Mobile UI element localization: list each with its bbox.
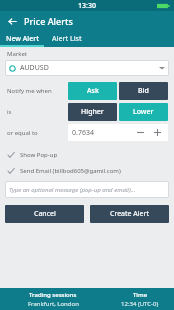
button[interactable]: Create Alert	[90, 205, 169, 223]
staticText: Time	[133, 291, 148, 299]
staticText: Bid	[138, 86, 149, 96]
staticText: Show Pop-up	[20, 151, 58, 159]
staticText: Ask	[87, 86, 99, 96]
button[interactable]: Send Email (billbod605@gamil.com)	[5, 165, 169, 176]
staticText: Create Alert	[110, 209, 149, 219]
staticText: 12:34 (UTC-0)	[121, 300, 159, 308]
button[interactable]: Lower	[119, 103, 168, 121]
staticText: Price Alerts	[24, 15, 73, 27]
staticText: Frankfurt, London	[28, 300, 79, 308]
button[interactable]: Time	[106, 291, 174, 308]
staticText: AUDUSD	[20, 63, 49, 73]
staticText: Alert List	[52, 34, 82, 44]
staticText: Type an optional message (pop-up and ema…	[9, 186, 136, 194]
staticText: New Alert	[6, 34, 39, 44]
button[interactable]: Ask	[68, 82, 117, 100]
button[interactable]: Decrease	[134, 126, 147, 139]
button[interactable]: Increase	[151, 126, 164, 139]
staticText: Notify me when	[7, 87, 67, 95]
button[interactable]: New Alert	[0, 31, 44, 47]
button[interactable]: Show Pop-up	[5, 149, 169, 160]
staticText: or equal to	[7, 129, 67, 137]
button[interactable]: Alert List	[44, 31, 90, 47]
button[interactable]: Bid	[119, 82, 168, 100]
staticText: is	[7, 108, 67, 116]
staticText: 13:30	[78, 1, 96, 11]
staticText: Trading sessions	[29, 291, 77, 299]
staticText: Market	[7, 50, 28, 58]
button[interactable]: Type an optional message (pop-up and ema…	[5, 181, 169, 198]
button[interactable]: Cancel	[5, 205, 84, 223]
button[interactable]: Trading sessions	[0, 291, 106, 308]
staticText: Cancel	[34, 209, 56, 219]
button[interactable]: AUDUSD	[5, 60, 169, 76]
staticText: 0.7634	[72, 128, 94, 138]
staticText: Higher	[81, 107, 104, 117]
staticText: Send Email (billbod605@gamil.com)	[20, 167, 121, 175]
button[interactable]: Higher	[68, 103, 117, 121]
staticText: Lower	[133, 107, 154, 117]
button[interactable]: Back	[4, 13, 20, 29]
